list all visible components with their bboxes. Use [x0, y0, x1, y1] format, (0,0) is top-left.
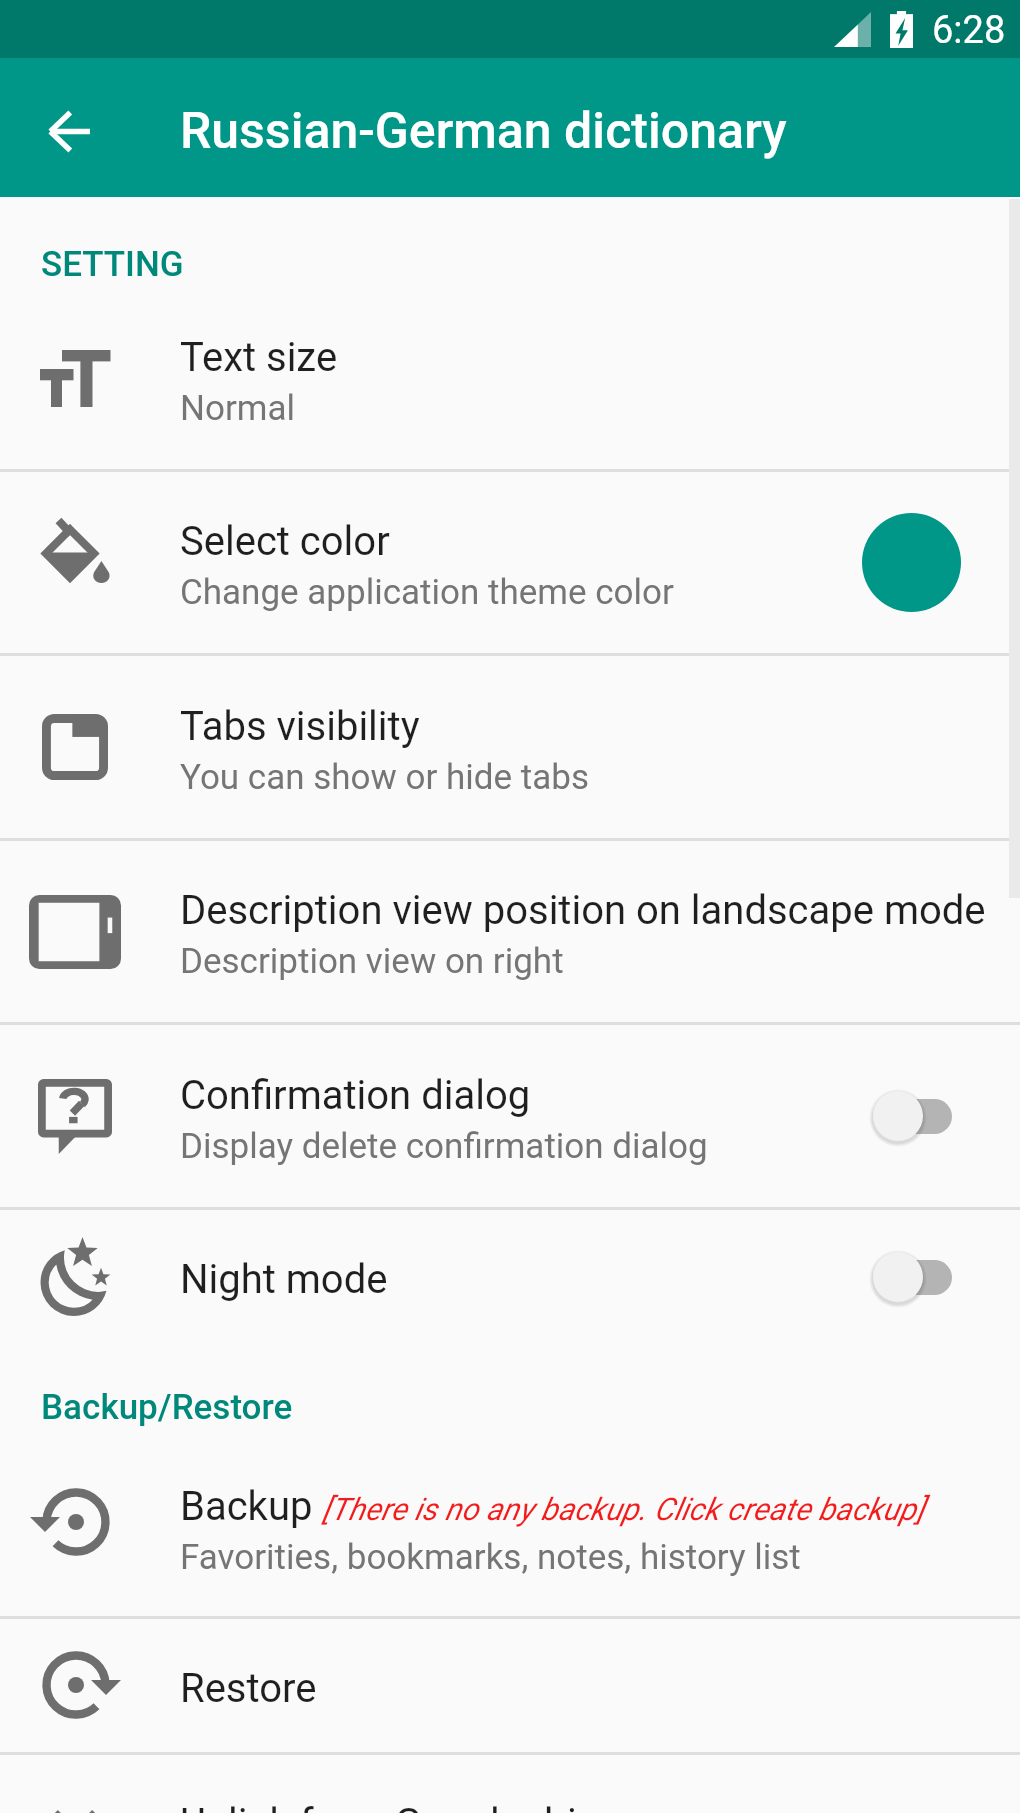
staticText: Favorities, bookmarks, notes, history li…: [180, 1537, 801, 1578]
button[interactable]: Backup [There is no any backup. Click cr…: [0, 1439, 1020, 1616]
button[interactable]: Tabs visibility: [0, 656, 1020, 838]
staticText: You can show or hide tabs: [180, 757, 589, 798]
staticText: 6:28: [932, 8, 1006, 53]
staticText: Confirmation dialog: [180, 1072, 531, 1119]
staticText: Change application theme color: [180, 572, 674, 613]
staticText: Unlink from Google drive: [180, 1800, 618, 1813]
staticText: Text size: [180, 334, 338, 381]
button[interactable]: Unlink from Google drive: [0, 1755, 1020, 1813]
staticText: Backup/Restore: [41, 1387, 293, 1428]
staticText: Normal: [180, 388, 296, 429]
staticText: Select color: [180, 518, 390, 565]
button[interactable]: Text size: [0, 287, 1020, 469]
button[interactable]: Description view position on landscape m…: [0, 841, 1020, 1022]
button[interactable]: Select color: [0, 472, 1020, 653]
staticText: Display delete confirmation dialog: [180, 1126, 708, 1167]
button[interactable]: Back: [17, 79, 121, 183]
staticText: Restore: [180, 1665, 317, 1712]
staticText: Backup [There is no any backup. Click cr…: [180, 1483, 924, 1530]
staticText: Description view on right: [180, 941, 564, 982]
staticText: Tabs visibility: [180, 703, 420, 750]
button[interactable]: Confirmation dialog: [0, 1025, 1020, 1207]
button[interactable]: Night mode: [0, 1210, 1020, 1343]
staticText: Russian-German dictionary: [180, 102, 787, 161]
staticText: Description view position on landscape m…: [180, 887, 986, 934]
staticText: SETTING: [41, 244, 184, 285]
staticText: Night mode: [180, 1256, 388, 1303]
button[interactable]: Restore: [0, 1619, 1020, 1752]
